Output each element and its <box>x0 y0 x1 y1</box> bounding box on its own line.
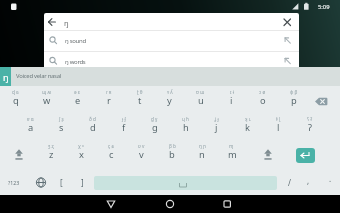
button[interactable]: / <box>279 170 299 195</box>
button[interactable] <box>6 143 32 167</box>
staticText: q <box>13 94 19 107</box>
staticText: ?123 <box>8 179 20 186</box>
staticText: ŋ <box>64 18 69 28</box>
button[interactable]: q <box>0 87 31 114</box>
staticText: ɪ ɨ <box>230 89 234 95</box>
staticText: . <box>329 173 332 184</box>
button[interactable]: [ <box>49 170 73 195</box>
button[interactable]: r <box>93 87 124 114</box>
button[interactable] <box>157 195 183 213</box>
staticText: ɐ ɑ <box>27 116 34 122</box>
button[interactable]: f <box>108 114 139 141</box>
staticText: ʏ ʎ <box>167 89 173 95</box>
staticText: l <box>277 121 280 134</box>
staticText: z <box>49 148 54 161</box>
button[interactable]: t <box>124 87 155 114</box>
staticText: ɱ <box>229 143 236 149</box>
staticText: r <box>107 94 111 107</box>
button[interactable] <box>44 13 299 30</box>
button[interactable] <box>214 195 240 213</box>
button[interactable]: , <box>298 168 318 193</box>
staticText: p <box>291 94 297 107</box>
staticText: ç ɕ <box>108 143 114 149</box>
button[interactable]: u <box>185 87 216 114</box>
button[interactable]: i <box>216 87 247 114</box>
staticText: ɠ ɣ <box>151 116 158 122</box>
staticText: 5:09 <box>318 3 330 11</box>
staticText: [ <box>60 177 63 188</box>
button[interactable] <box>29 170 53 195</box>
button[interactable]: d <box>77 114 108 141</box>
button[interactable]: ʔ <box>294 114 325 141</box>
staticText: ʞ ʟ <box>245 116 251 122</box>
staticText: ɖ ɢ <box>12 89 19 95</box>
staticText: i <box>230 94 233 107</box>
button[interactable]: k <box>232 114 263 141</box>
button[interactable] <box>44 30 299 51</box>
staticText: ʊ ɯ <box>196 89 205 95</box>
button[interactable] <box>98 195 124 213</box>
staticText: a <box>28 121 34 134</box>
staticText: ʋ ⱱ <box>138 143 145 149</box>
button[interactable]: h <box>170 114 201 141</box>
staticText: ɟ ʄ <box>122 116 126 122</box>
staticText: u <box>198 94 204 107</box>
button[interactable]: v <box>126 141 156 168</box>
button[interactable]: ] <box>70 170 94 195</box>
staticText: β ɓ <box>169 143 176 149</box>
button[interactable]: . <box>320 166 340 191</box>
staticText: χ ᵡ <box>78 143 84 149</box>
staticText: ] <box>81 177 84 188</box>
staticText: h <box>183 121 189 134</box>
button[interactable]: m <box>217 141 247 168</box>
button[interactable]: b <box>157 141 187 168</box>
button[interactable]: c <box>96 141 126 168</box>
staticText: ɥ ɦ <box>182 116 189 122</box>
button[interactable]: a <box>15 114 46 141</box>
staticText: ʔ <box>308 121 312 134</box>
staticText: f <box>122 121 126 134</box>
staticText: m <box>228 148 237 161</box>
staticText: w <box>43 94 51 107</box>
button[interactable]: z <box>36 141 66 168</box>
staticText: ə ɛ <box>74 89 81 95</box>
button[interactable]: l <box>263 114 294 141</box>
button[interactable]: x <box>66 141 96 168</box>
staticText: ɔ ø <box>259 89 266 95</box>
button[interactable]: g <box>139 114 170 141</box>
button[interactable] <box>309 89 340 114</box>
staticText: k <box>245 121 250 134</box>
staticText: ʒ ʐ <box>48 143 54 149</box>
staticText: e <box>75 94 81 107</box>
staticText: ʃ ʂ <box>59 116 64 122</box>
staticText: ɾ ʀ <box>106 89 112 95</box>
staticText: ɰ ʍ <box>42 89 52 95</box>
staticText: ʕ ʡ <box>307 116 313 122</box>
button[interactable]: e <box>62 87 93 114</box>
staticText: , <box>307 175 310 186</box>
staticText: ŋ sound <box>65 37 86 45</box>
staticText: b <box>169 148 175 161</box>
button[interactable]: n <box>187 141 217 168</box>
button[interactable] <box>255 143 281 167</box>
button[interactable]: y <box>154 87 185 114</box>
button[interactable]: w <box>31 87 62 114</box>
staticText: d <box>90 121 96 134</box>
staticText: ŋ ɲ <box>199 143 206 149</box>
button[interactable]: ŋ <box>0 67 11 86</box>
button[interactable]: o <box>247 87 278 114</box>
staticText: s <box>59 121 64 134</box>
button[interactable]: j <box>201 114 232 141</box>
staticText: v <box>139 148 144 161</box>
staticText: ð ɗ <box>89 116 96 122</box>
button[interactable] <box>0 67 340 86</box>
button[interactable] <box>296 148 315 163</box>
button[interactable]: ?123 <box>2 170 26 195</box>
staticText: ʈ θ <box>137 89 143 95</box>
staticText: / <box>288 177 291 188</box>
button[interactable]: p <box>278 87 309 114</box>
button[interactable] <box>94 176 277 190</box>
button[interactable] <box>44 51 299 67</box>
button[interactable]: s <box>46 114 77 141</box>
staticText: t <box>138 94 142 107</box>
